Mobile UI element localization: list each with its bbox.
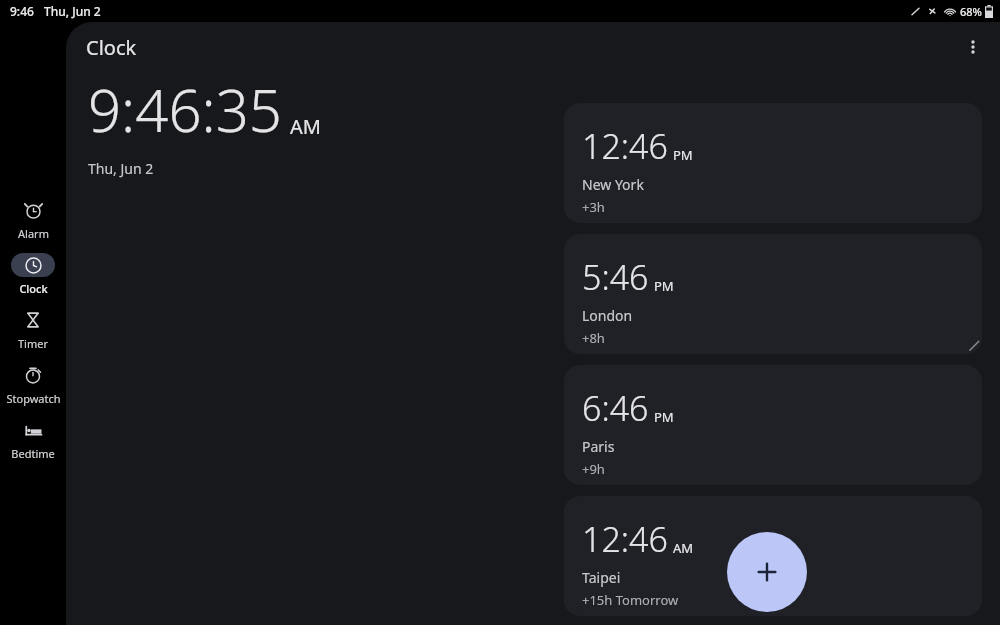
staticText: Clock xyxy=(86,34,137,61)
staticText: 6:46 xyxy=(582,385,649,431)
staticText: London xyxy=(582,306,633,325)
staticText: +8h xyxy=(582,329,605,347)
button[interactable]: Bedtime xyxy=(0,418,66,473)
staticText: 12:46 xyxy=(582,123,668,169)
button[interactable]: 12:46 xyxy=(564,496,982,616)
staticText: +15h Tomorrow xyxy=(582,591,679,609)
staticText: Timer xyxy=(18,336,48,351)
staticText: 68% xyxy=(960,4,982,19)
staticText: Stopwatch xyxy=(6,391,61,406)
staticText: Paris xyxy=(582,437,615,456)
button[interactable]: Clock xyxy=(0,253,66,308)
staticText: +3h xyxy=(582,198,605,216)
staticText: Bedtime xyxy=(11,446,55,461)
staticText: Thu, Jun 2 xyxy=(88,159,154,178)
staticText: Alarm xyxy=(18,226,49,241)
staticText: Thu, Jun 2 xyxy=(44,3,101,19)
button[interactable]: Alarm xyxy=(0,198,66,253)
staticText: AM xyxy=(673,539,694,557)
staticText: PM xyxy=(654,277,674,295)
button[interactable]: 5:46 xyxy=(564,234,982,354)
staticText: AM xyxy=(290,113,321,140)
button[interactable]: Stopwatch xyxy=(0,363,66,418)
staticText: Clock xyxy=(19,281,48,296)
staticText: 5:46 xyxy=(582,254,649,300)
staticText: New York xyxy=(582,175,644,194)
button[interactable]: 6:46 xyxy=(564,365,982,485)
staticText: Taipei xyxy=(582,568,621,587)
staticText: +9h xyxy=(582,460,605,478)
staticText: PM xyxy=(673,146,693,164)
button[interactable]: Timer xyxy=(0,308,66,363)
button[interactable]: Add city xyxy=(727,532,807,612)
staticText: 9:46:35 xyxy=(88,70,282,149)
staticText: 12:46 xyxy=(582,516,668,562)
staticText: 9:46 xyxy=(10,3,34,19)
staticText: PM xyxy=(654,408,674,426)
button[interactable]: More options xyxy=(956,30,990,64)
button[interactable]: 12:46 xyxy=(564,103,982,223)
